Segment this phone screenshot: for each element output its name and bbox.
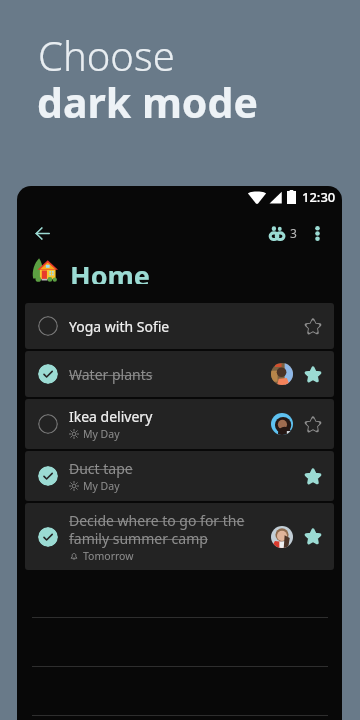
button[interactable]: Star task — [301, 413, 324, 436]
other: Assignee — [271, 413, 293, 435]
staticText: Water plants — [69, 365, 153, 384]
staticText: Home — [70, 257, 150, 284]
button[interactable]: More options — [302, 218, 332, 248]
staticText: dark mode — [37, 74, 258, 130]
button[interactable]: Back — [25, 216, 59, 250]
other: Assignee — [271, 363, 293, 385]
staticText: 12:30 — [302, 188, 336, 206]
button[interactable]: Completed — [25, 351, 334, 397]
button[interactable]: Mark complete — [38, 414, 58, 434]
button[interactable]: Star task — [301, 525, 324, 548]
button[interactable]: Mark complete — [38, 316, 58, 336]
button[interactable]: Mark complete — [25, 303, 334, 349]
staticText: Ikea delivery — [69, 407, 153, 426]
staticText: My Day — [83, 479, 120, 493]
button[interactable]: Star task — [301, 363, 324, 386]
button[interactable]: Star task — [301, 465, 324, 488]
staticText: Duct tape — [69, 459, 133, 478]
other: Assignee — [271, 526, 293, 548]
staticText: Decide where to go for the family summer… — [69, 511, 271, 548]
button[interactable]: Completed — [25, 451, 334, 501]
button[interactable]: Completed — [38, 364, 58, 384]
staticText: Yoga with Sofie — [69, 317, 170, 336]
staticText: My Day — [83, 427, 120, 441]
staticText: Tomorrow — [83, 549, 134, 563]
button[interactable]: Shared with 3 people — [265, 220, 302, 246]
button[interactable]: Star task — [301, 315, 324, 338]
button[interactable]: Mark complete — [25, 399, 334, 449]
button[interactable]: Completed — [25, 503, 334, 570]
staticText: 3 — [290, 225, 297, 241]
button[interactable]: Completed — [38, 466, 58, 486]
staticText: Choose — [38, 28, 175, 82]
button[interactable]: Completed — [38, 527, 58, 547]
